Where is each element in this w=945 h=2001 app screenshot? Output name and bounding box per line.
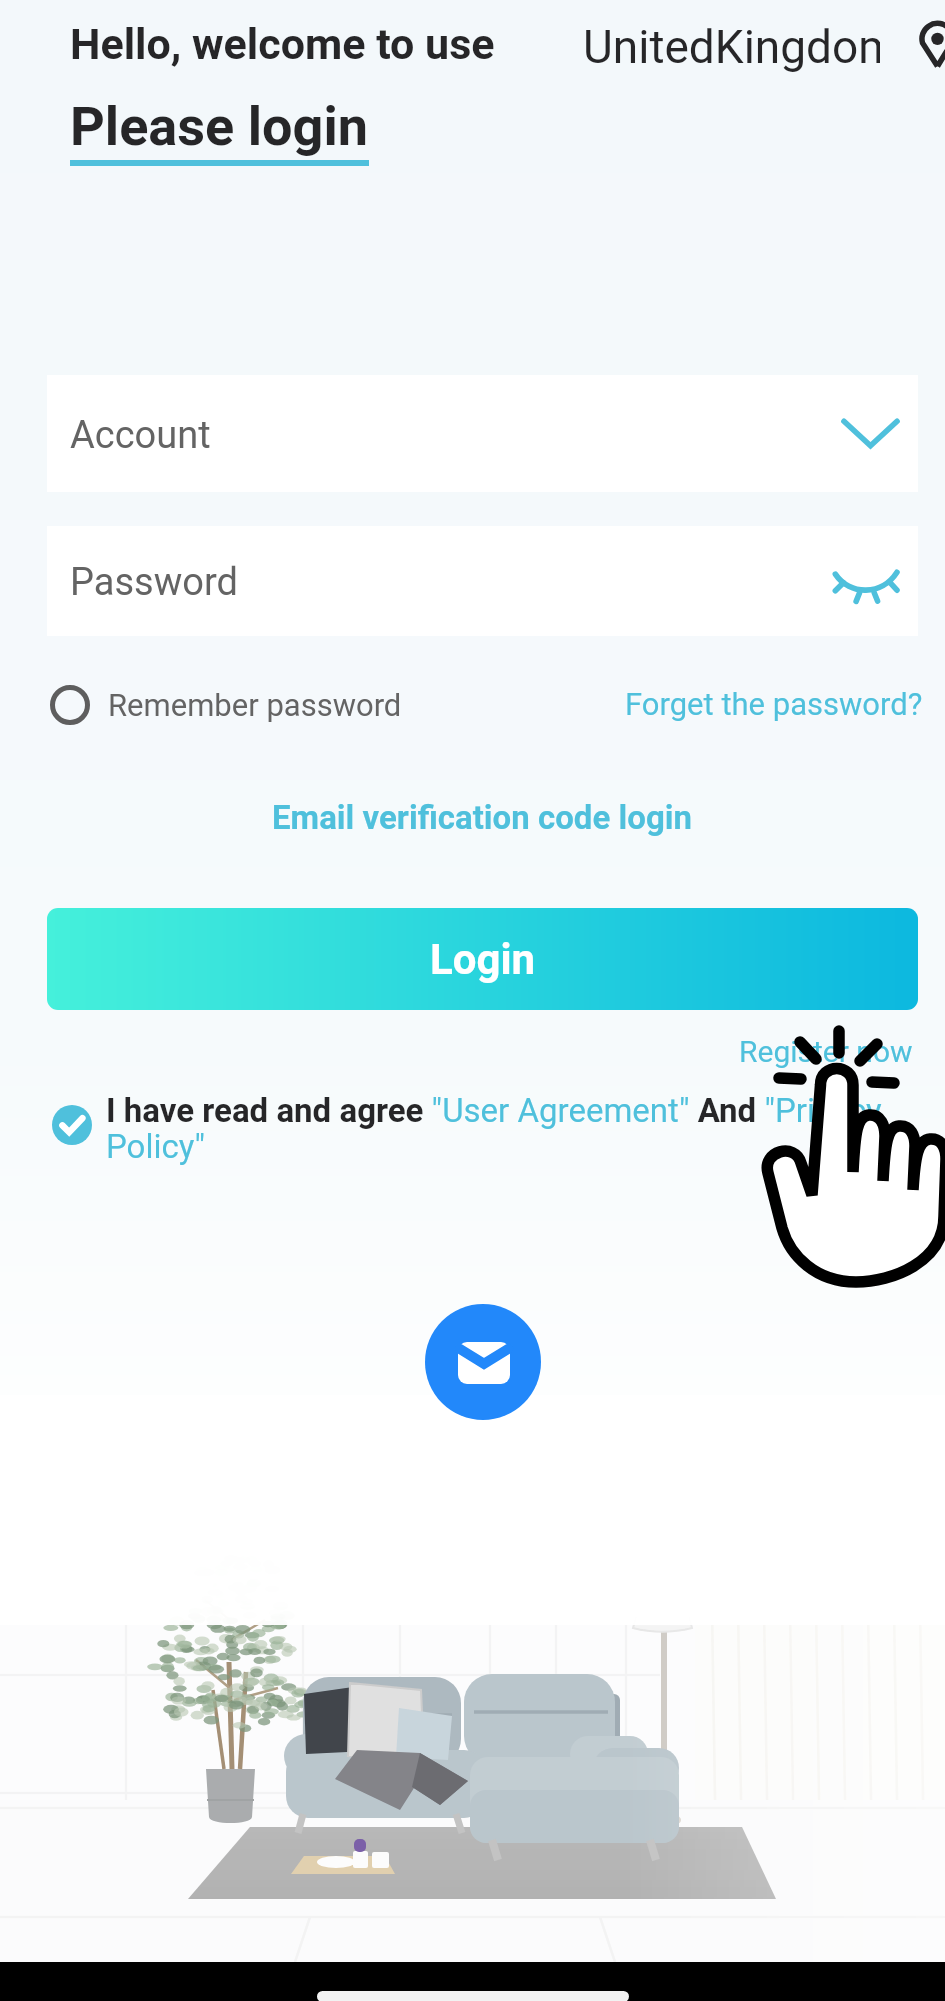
button[interactable]: Account [47, 375, 918, 492]
button[interactable]: I have read and agree "User Agreement" A… [106, 1091, 918, 1166]
staticText: I have read and agree "User Agreement" A… [106, 1091, 918, 1166]
button[interactable]: Login [47, 908, 918, 1010]
staticText: UnitedKingdom [583, 20, 880, 74]
button[interactable]: Show password [833, 571, 900, 602]
staticText: Password [70, 560, 238, 605]
staticText: Please login [70, 95, 369, 158]
button[interactable]: Email login [425, 1304, 541, 1420]
button[interactable]: Remember password [48, 683, 402, 727]
button[interactable]: Agree to terms [52, 1105, 92, 1145]
staticText: Account [70, 413, 211, 458]
button[interactable]: UnitedKingdom [583, 20, 880, 78]
button[interactable]: Choose account [841, 417, 900, 450]
button[interactable]: Email verification code login [272, 798, 692, 837]
staticText: Hello, welcome to use [70, 19, 495, 69]
button[interactable]: Password [47, 526, 918, 636]
staticText: Remember password [108, 687, 402, 723]
button[interactable]: Forget the password? [625, 686, 923, 722]
button[interactable]: Register now [739, 1034, 913, 1069]
staticText: Login [430, 935, 536, 984]
button[interactable]: Location [919, 23, 945, 69]
